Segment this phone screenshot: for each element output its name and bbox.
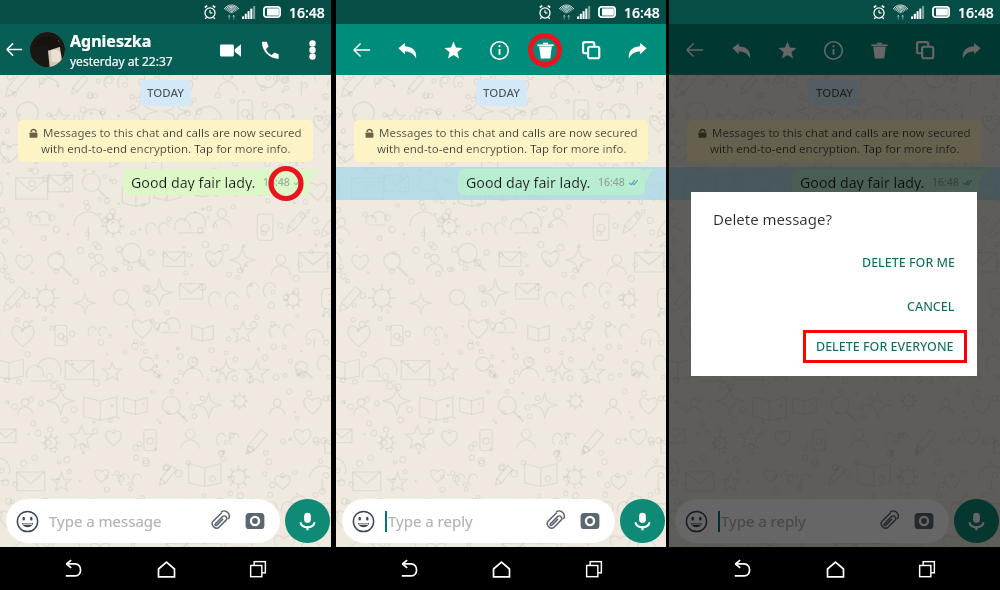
button[interactable]: Back [344,32,380,68]
button[interactable]: Type a reply [342,499,615,543]
button[interactable]: Good day fair lady. [458,169,645,195]
staticText: DELETE FOR ME [862,254,955,271]
button[interactable]: Delete [861,32,897,68]
staticText: with end-to-end encryption. Tap for more… [710,141,960,157]
button[interactable]: Info [815,32,851,68]
staticText: 16:48 [958,3,994,22]
button[interactable]: Copy [907,32,943,68]
button[interactable]: Attach [207,509,231,533]
button[interactable]: Recent apps [907,549,947,589]
button[interactable]: Home [481,549,521,589]
staticText: 16:48 [289,3,325,22]
button[interactable]: Back [722,549,762,589]
button[interactable]: Good day fair lady. [123,169,310,195]
button[interactable]: Messages to this chat and calls are now … [687,120,982,162]
button[interactable]: Type a message [6,499,280,543]
staticText: Type a message [49,511,207,531]
button[interactable]: Home [146,549,186,589]
button[interactable]: Info [481,32,517,68]
staticText: Messages to this chat and calls are now … [379,125,638,141]
button[interactable]: Star [435,32,471,68]
button[interactable]: Back [389,549,429,589]
staticText: DELETE FOR EVERYONE [816,338,954,355]
button[interactable]: Camera [578,509,602,533]
staticText: with end-to-end encryption. Tap for more… [41,141,291,157]
button[interactable]: Voice call [251,31,289,69]
button[interactable]: Good day fair lady. [792,169,979,195]
staticText: Type a reply [721,511,876,531]
button[interactable]: Recent apps [574,549,614,589]
button[interactable]: TODAY [476,80,527,106]
button[interactable]: Delete [527,32,563,68]
staticText: TODAY [483,85,520,101]
staticText: Agnieszka [70,30,152,52]
button[interactable]: Back [0,35,29,64]
button[interactable]: Camera [912,509,936,533]
staticText: Good day fair lady. [131,173,256,191]
staticText: TODAY [816,85,853,101]
button[interactable]: Video call [209,29,251,71]
button[interactable]: Attach [876,509,900,533]
button[interactable]: TODAY [809,80,860,106]
button[interactable]: Star [769,32,805,68]
button[interactable]: Forward [619,32,655,68]
button[interactable]: Messages to this chat and calls are now … [354,120,648,162]
staticText: TODAY [147,85,184,101]
button[interactable]: Home [815,549,855,589]
button[interactable]: DELETE FOR ME [849,248,968,277]
staticText: Type a reply [388,511,542,531]
staticText: Messages to this chat and calls are now … [43,125,302,141]
staticText: 16:48 [598,175,625,189]
staticText: 16:48 [624,3,660,22]
button[interactable]: Copy [573,32,609,68]
button[interactable]: CANCEL [894,292,968,321]
button[interactable]: Type a reply [675,499,949,543]
staticText: 16:48 [263,175,290,189]
button[interactable]: Back [53,549,93,589]
staticText: yesterday at 22:37 [70,53,173,69]
button[interactable]: TODAY [140,80,191,106]
button[interactable]: Record voice message [954,499,999,543]
button[interactable]: Record voice message [620,499,665,543]
staticText: with end-to-end encryption. Tap for more… [377,141,627,157]
button[interactable]: Reply [723,32,759,68]
button[interactable]: More options [299,37,325,63]
button[interactable]: Reply [389,32,425,68]
button[interactable]: Record voice message [285,499,330,543]
staticText: CANCEL [907,298,955,315]
button[interactable]: Messages to this chat and calls are now … [18,120,313,162]
staticText: Messages to this chat and calls are now … [712,125,971,141]
staticText: 16:48 [932,175,959,189]
staticText: Good day fair lady. [466,173,591,191]
button[interactable]: DELETE FOR EVERYONE [803,330,967,363]
staticText: Delete message? [713,209,832,229]
button[interactable]: Attach [542,509,566,533]
button[interactable]: Back [677,32,713,68]
button[interactable]: Camera [243,509,267,533]
button[interactable]: Forward [953,32,989,68]
button[interactable]: Recent apps [238,549,278,589]
staticText: Good day fair lady. [800,173,925,191]
